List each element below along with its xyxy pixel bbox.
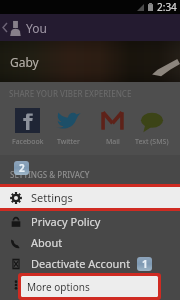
staticText: Facebook: [12, 137, 44, 147]
staticText: Settings: [31, 190, 73, 205]
staticText: About: [31, 235, 63, 250]
staticText: 2:34: [157, 0, 177, 14]
button[interactable]: Back: [0, 14, 9, 41]
staticText: SHARE YOUR VIBER EXPERIENCE: [9, 88, 132, 99]
button[interactable]: Twitter: [45, 108, 92, 147]
button[interactable]: Facebook: [4, 108, 51, 147]
staticText: 2: [19, 161, 25, 175]
button[interactable]: About: [0, 232, 180, 253]
staticText: SETTINGS & PRIVACY: [10, 169, 90, 180]
staticText: Privacy Policy: [31, 214, 101, 229]
staticText: 1: [142, 257, 148, 271]
staticText: Mail: [106, 137, 120, 147]
staticText: You: [26, 20, 47, 36]
button[interactable]: More options: [0, 274, 180, 295]
button[interactable]: Settings: [0, 187, 180, 208]
staticText: Deactivate Account: [31, 256, 131, 271]
staticText: Twitter: [57, 137, 80, 147]
staticText: More options: [27, 280, 90, 294]
button[interactable]: Deactivate Account: [0, 253, 180, 274]
staticText: Gaby: [10, 54, 39, 70]
staticText: More options: [31, 277, 100, 292]
button[interactable]: Mail: [89, 108, 136, 147]
button[interactable]: More options: [21, 276, 158, 297]
button[interactable]: Text (SMS): [128, 108, 175, 147]
button[interactable]: Privacy Policy: [0, 211, 180, 232]
staticText: Text (SMS): [135, 137, 169, 147]
